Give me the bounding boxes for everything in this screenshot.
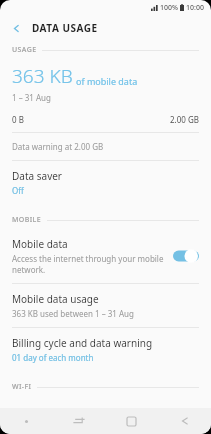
staticText: 10:00 — [186, 3, 204, 13]
staticText: Mobile data usage — [12, 292, 99, 306]
staticText: MOBILE — [12, 215, 42, 225]
button[interactable]: Menu — [0, 408, 52, 434]
staticText: Mobile data — [12, 237, 68, 251]
staticText: 363 KB — [12, 63, 73, 89]
staticText: Off — [12, 185, 24, 196]
button[interactable]: Home — [105, 408, 158, 434]
staticText: USAGE — [12, 45, 37, 55]
staticText: Billing cycle and data warning — [12, 336, 153, 350]
staticText: 01 day of each month — [12, 352, 94, 363]
button[interactable]: Recents — [52, 408, 105, 434]
staticText: 2.00 GB — [170, 114, 199, 125]
button[interactable]: Data saver — [0, 161, 211, 204]
staticText: 100% — [160, 3, 178, 13]
button[interactable]: Mobile data usage — [0, 284, 211, 327]
staticText: Data warning at 2.00 GB — [12, 141, 104, 152]
button[interactable]: Mobile data — [0, 229, 211, 283]
staticText: 0 B — [12, 114, 24, 125]
staticText: DATA USAGE — [32, 21, 98, 35]
button[interactable]: Back — [158, 408, 211, 434]
button[interactable]: 363 KB — [0, 59, 211, 107]
button[interactable]: Billing cycle and data warning — [0, 328, 211, 371]
staticText: 1 – 31 Aug — [12, 92, 51, 103]
staticText: Data saver — [12, 169, 62, 183]
staticText: of mobile data — [76, 75, 138, 87]
other: Mobile data toggle — [173, 249, 199, 263]
staticText: Access the internet through your mobile … — [12, 253, 165, 275]
staticText: 363 KB used between 1 – 31 Aug — [12, 308, 134, 319]
button[interactable]: Data warning at 2.00 GB — [0, 133, 211, 160]
button[interactable]: Back — [0, 15, 32, 41]
staticText: WI-FI — [12, 382, 32, 392]
